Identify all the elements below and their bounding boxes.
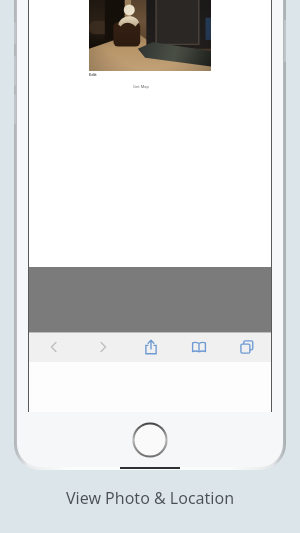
button[interactable]: Bookmarks bbox=[175, 332, 223, 362]
button[interactable]: Share bbox=[127, 332, 175, 362]
button[interactable]: Tabs bbox=[223, 332, 271, 362]
button[interactable] bbox=[89, 0, 211, 71]
button[interactable]: Forward bbox=[78, 332, 127, 362]
staticText: Edit bbox=[89, 72, 97, 77]
button[interactable]: Home bbox=[132, 422, 168, 458]
button[interactable]: Get Map bbox=[133, 84, 149, 89]
button[interactable]: Back bbox=[29, 332, 78, 362]
staticText: View Photo & Location bbox=[0, 487, 300, 509]
